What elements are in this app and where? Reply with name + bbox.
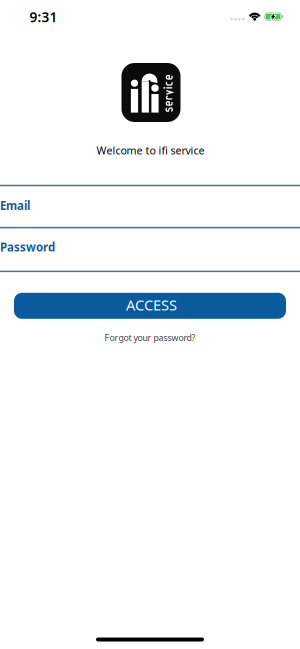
button[interactable]: ACCESS — [14, 293, 286, 319]
button[interactable]: Password — [0, 228, 300, 270]
staticText: Password — [0, 239, 55, 255]
button[interactable]: Email — [0, 186, 300, 227]
staticText: 9:31 — [29, 8, 57, 26]
staticText: Email — [0, 198, 30, 213]
button[interactable]: Forgot your password? — [104, 332, 195, 344]
staticText: Forgot your password? — [104, 332, 195, 344]
staticText: Welcome to ifi service — [96, 143, 204, 157]
staticText: ACCESS — [126, 295, 177, 315]
